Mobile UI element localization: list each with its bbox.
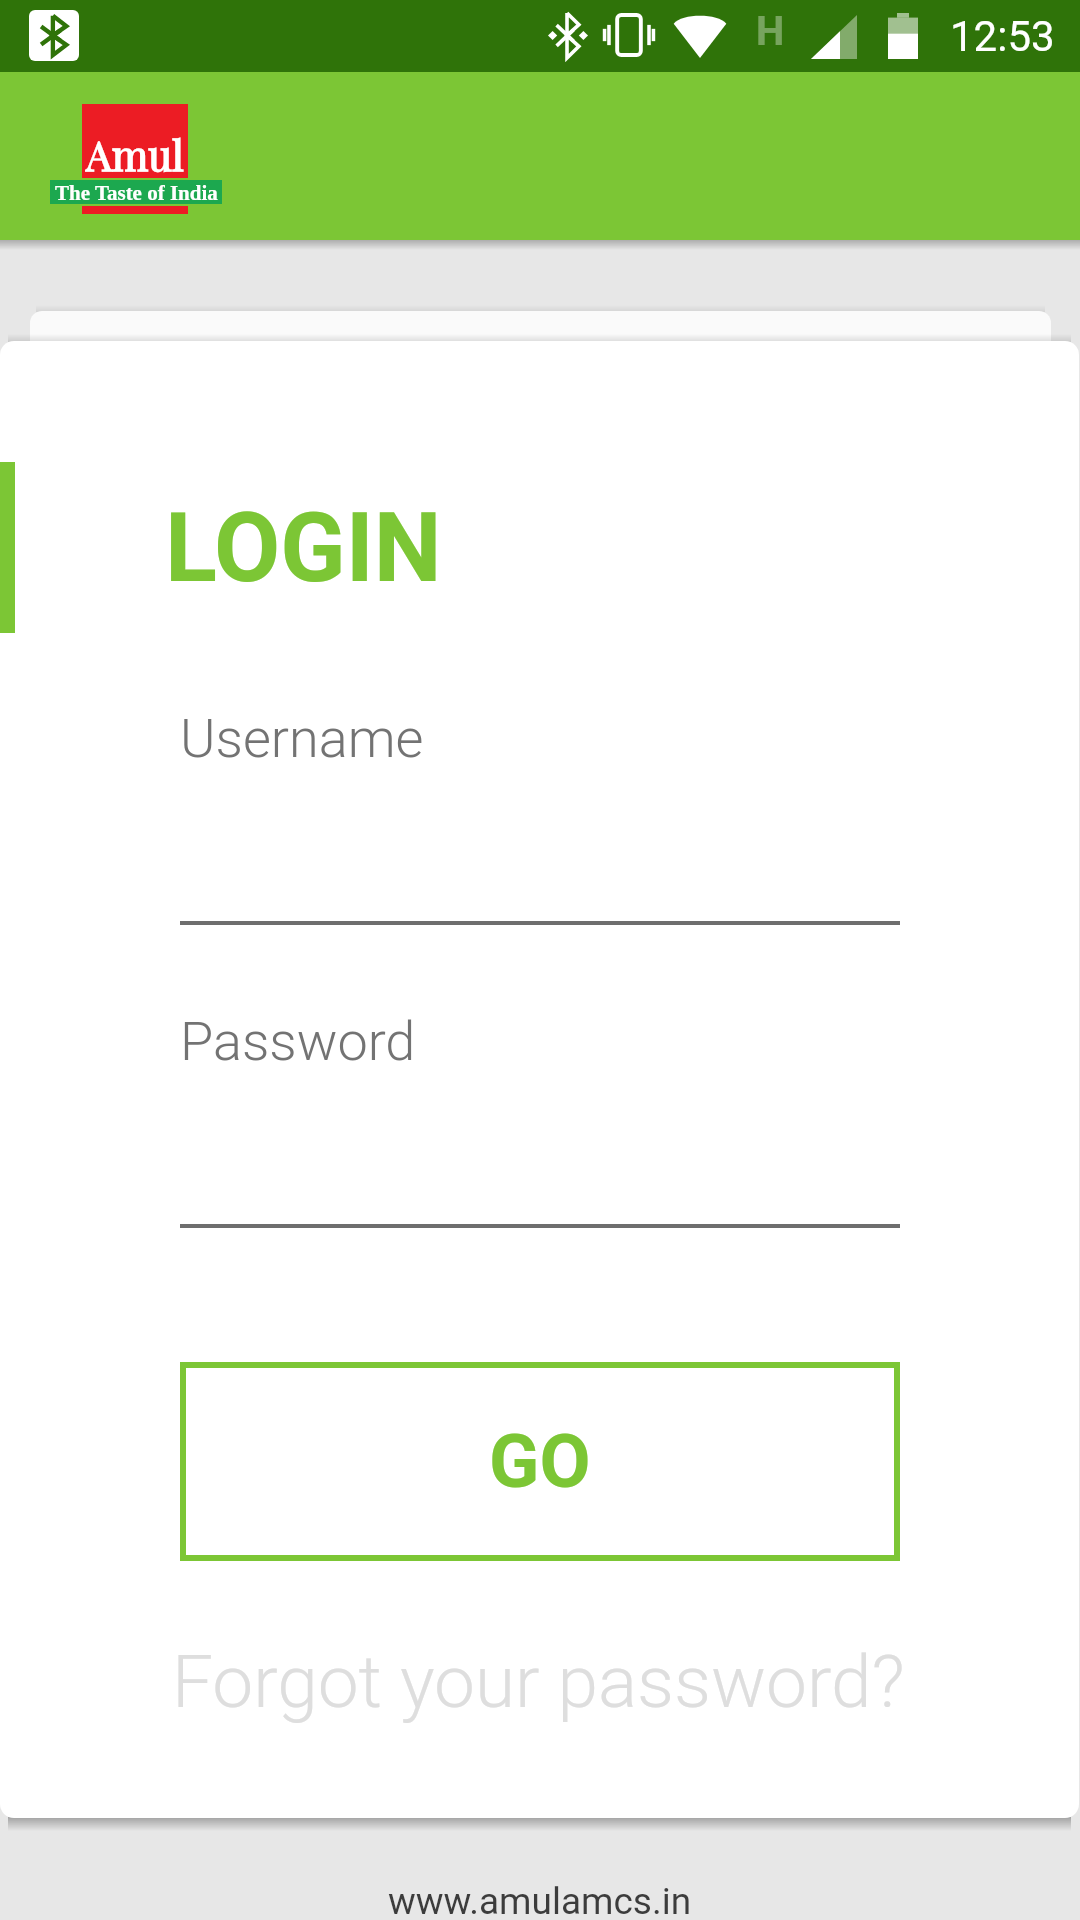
other: Bluetooth notification [29, 10, 79, 61]
button[interactable]: Forgot your password? [148, 1617, 928, 1747]
staticText: Forgot your password? [172, 1639, 905, 1725]
staticText: Username [180, 707, 424, 770]
staticText: www.amulamcs.in [388, 1880, 692, 1920]
button[interactable]: GO [180, 1362, 900, 1561]
staticText: Password [180, 1010, 416, 1073]
staticText: LOGIN [165, 492, 442, 605]
staticText: 12:53 [950, 12, 1055, 61]
button[interactable]: Amul - The Taste of India, home [48, 104, 224, 219]
button[interactable]: Password [180, 1010, 900, 1238]
button[interactable]: Username [180, 707, 900, 935]
staticText: The Taste of India [55, 181, 218, 204]
staticText: GO [489, 1418, 591, 1505]
staticText: Amul [86, 127, 184, 182]
staticText: H [756, 8, 785, 55]
